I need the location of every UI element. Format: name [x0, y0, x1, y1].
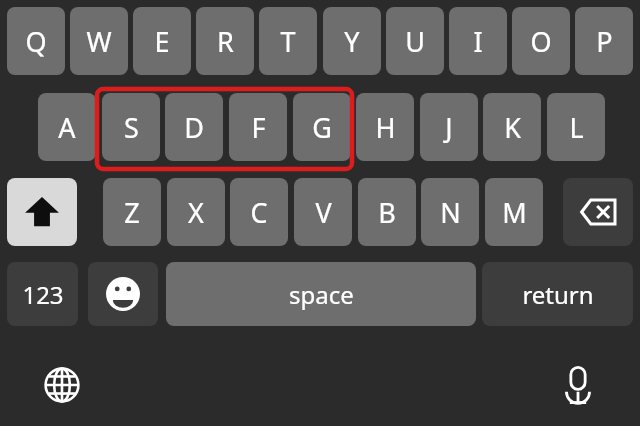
button[interactable]: S	[102, 93, 160, 161]
staticText: G	[312, 109, 332, 146]
button[interactable]: H	[356, 93, 414, 161]
staticText: space	[289, 278, 354, 311]
staticText: return	[522, 278, 594, 311]
button[interactable]: U	[386, 7, 444, 75]
button[interactable]: space	[166, 262, 476, 326]
button[interactable]: R	[196, 7, 254, 75]
button[interactable]: W	[70, 7, 128, 75]
button[interactable]: F	[229, 93, 287, 161]
staticText: N	[440, 194, 461, 231]
staticText: K	[504, 109, 521, 146]
staticText: S	[124, 109, 139, 146]
button[interactable]: P	[575, 7, 633, 75]
staticText: H	[375, 109, 396, 146]
button[interactable]: T	[259, 7, 317, 75]
staticText: M	[502, 194, 527, 231]
staticText: Q	[25, 23, 47, 60]
button[interactable]: K	[483, 93, 541, 161]
staticText: J	[445, 109, 453, 146]
button[interactable]: B	[358, 178, 416, 246]
staticText: R	[217, 23, 234, 60]
staticText: I	[473, 23, 483, 60]
button[interactable]: L	[547, 93, 605, 161]
button[interactable]: Z	[103, 178, 161, 246]
staticText: Y	[344, 23, 360, 60]
button[interactable]: D	[165, 93, 223, 161]
button[interactable]: 123	[7, 262, 78, 326]
staticText: A	[58, 109, 76, 146]
staticText: D	[184, 109, 204, 146]
button[interactable]: J	[420, 93, 478, 161]
button[interactable]: Q	[7, 7, 65, 75]
staticText: W	[86, 23, 112, 60]
button[interactable]: A	[38, 93, 96, 161]
button[interactable]: Backspace	[563, 178, 633, 246]
button[interactable]: Shift	[7, 178, 77, 246]
button[interactable]: Change keyboard	[34, 357, 90, 413]
staticText: O	[530, 23, 552, 60]
button[interactable]: I	[449, 7, 507, 75]
staticText: X	[188, 194, 204, 231]
button[interactable]: M	[485, 178, 543, 246]
button[interactable]: return	[482, 262, 633, 326]
staticText: B	[378, 194, 396, 231]
button[interactable]: C	[230, 178, 288, 246]
button[interactable]: V	[294, 178, 352, 246]
button[interactable]: E	[133, 7, 191, 75]
button[interactable]: Y	[323, 7, 381, 75]
button[interactable]: X	[167, 178, 225, 246]
button[interactable]: Emoji	[88, 262, 158, 326]
staticText: U	[405, 23, 425, 60]
button[interactable]: N	[421, 178, 479, 246]
button[interactable]: Dictate	[550, 357, 606, 413]
staticText: T	[280, 23, 296, 60]
staticText: 123	[22, 278, 64, 311]
staticText: F	[251, 109, 266, 146]
button[interactable]: O	[512, 7, 570, 75]
staticText: L	[569, 109, 584, 146]
button[interactable]: G	[293, 93, 351, 161]
staticText: Z	[124, 194, 140, 231]
staticText: V	[315, 194, 332, 231]
staticText: C	[250, 194, 268, 231]
staticText: E	[154, 23, 170, 60]
staticText: P	[596, 23, 613, 60]
